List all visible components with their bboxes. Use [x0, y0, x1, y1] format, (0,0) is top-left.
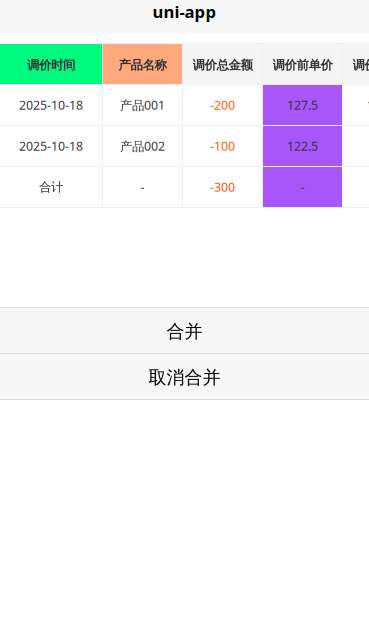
- button[interactable]: 合并: [0, 308, 369, 353]
- staticText: 取消合并: [148, 366, 220, 388]
- staticText: 调价后单价: [352, 57, 369, 73]
- staticText: 合并: [166, 320, 202, 342]
- staticText: -100: [210, 138, 235, 154]
- staticText: 调价前单价: [272, 57, 332, 73]
- staticText: uni-app: [152, 0, 216, 22]
- staticText: 合计: [39, 179, 63, 195]
- staticText: 107.5: [367, 97, 369, 113]
- staticText: 调价总金额: [192, 57, 252, 73]
- staticText: 产品002: [120, 138, 165, 154]
- staticText: -300: [210, 179, 235, 195]
- staticText: 调价时间: [27, 57, 75, 73]
- staticText: 2025-10-18: [19, 138, 83, 154]
- button[interactable]: 取消合并: [0, 354, 369, 399]
- staticText: 127.5: [287, 97, 318, 113]
- staticText: 产品名称: [118, 57, 166, 73]
- staticText: 产品001: [120, 97, 165, 113]
- staticText: 122.5: [287, 138, 318, 154]
- staticText: -200: [210, 97, 235, 113]
- staticText: -: [300, 179, 304, 195]
- staticText: 2025-10-18: [19, 97, 83, 113]
- staticText: -: [140, 179, 144, 195]
